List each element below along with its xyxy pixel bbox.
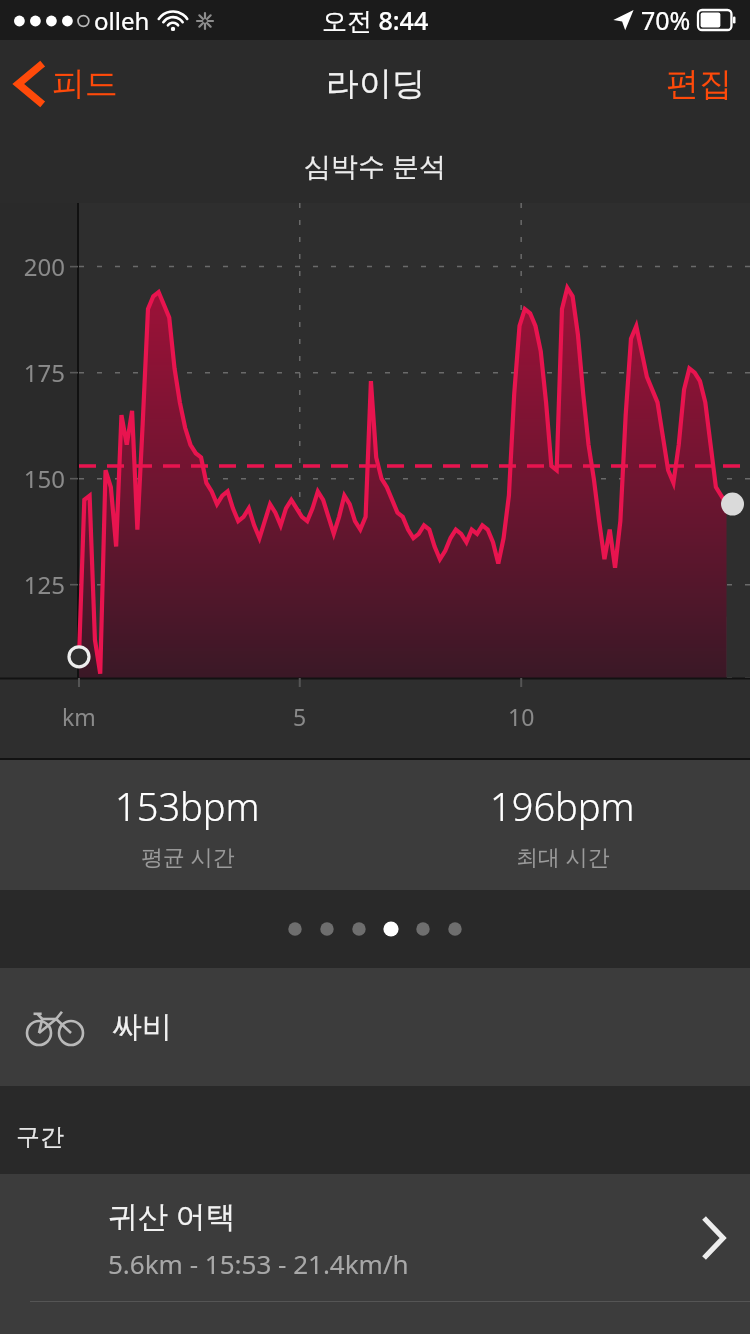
staticText: 200 [23, 250, 65, 283]
button[interactable]: 196bpm [375, 760, 750, 890]
staticText: 라이딩 [326, 63, 425, 105]
staticText: 최대 시간 [516, 841, 610, 871]
staticText: 125 [23, 568, 65, 601]
button[interactable]: 153bpm [0, 760, 375, 890]
staticText: 5 [293, 701, 307, 732]
staticText: 싸비 [112, 1008, 172, 1046]
staticText: 평균 시간 [141, 841, 235, 871]
staticText: 150 [23, 462, 65, 495]
staticText: 10 [508, 701, 535, 732]
staticText: 175 [23, 356, 65, 389]
staticText: 심박수 분석 [304, 147, 447, 184]
staticText: km [62, 701, 96, 732]
staticText: 편집 [666, 63, 732, 105]
staticText: olleh [94, 4, 150, 37]
staticText: 70% [641, 3, 691, 37]
staticText: 오전 8:44 [322, 3, 429, 37]
staticText: 196bpm [490, 780, 635, 832]
button[interactable]: 피드 [0, 52, 136, 116]
staticText: 구간 [16, 1122, 64, 1152]
button[interactable]: 편집 [648, 51, 750, 117]
staticText: 피드 [52, 63, 118, 105]
staticText: 5.6km - 15:53 - 21.4km/h [108, 1246, 409, 1281]
button[interactable]: 싸비 [0, 968, 750, 1086]
button[interactable]: 귀산 어택 [0, 1174, 750, 1302]
staticText: 153bpm [115, 780, 260, 832]
staticText: 귀산 어택 [108, 1195, 236, 1236]
